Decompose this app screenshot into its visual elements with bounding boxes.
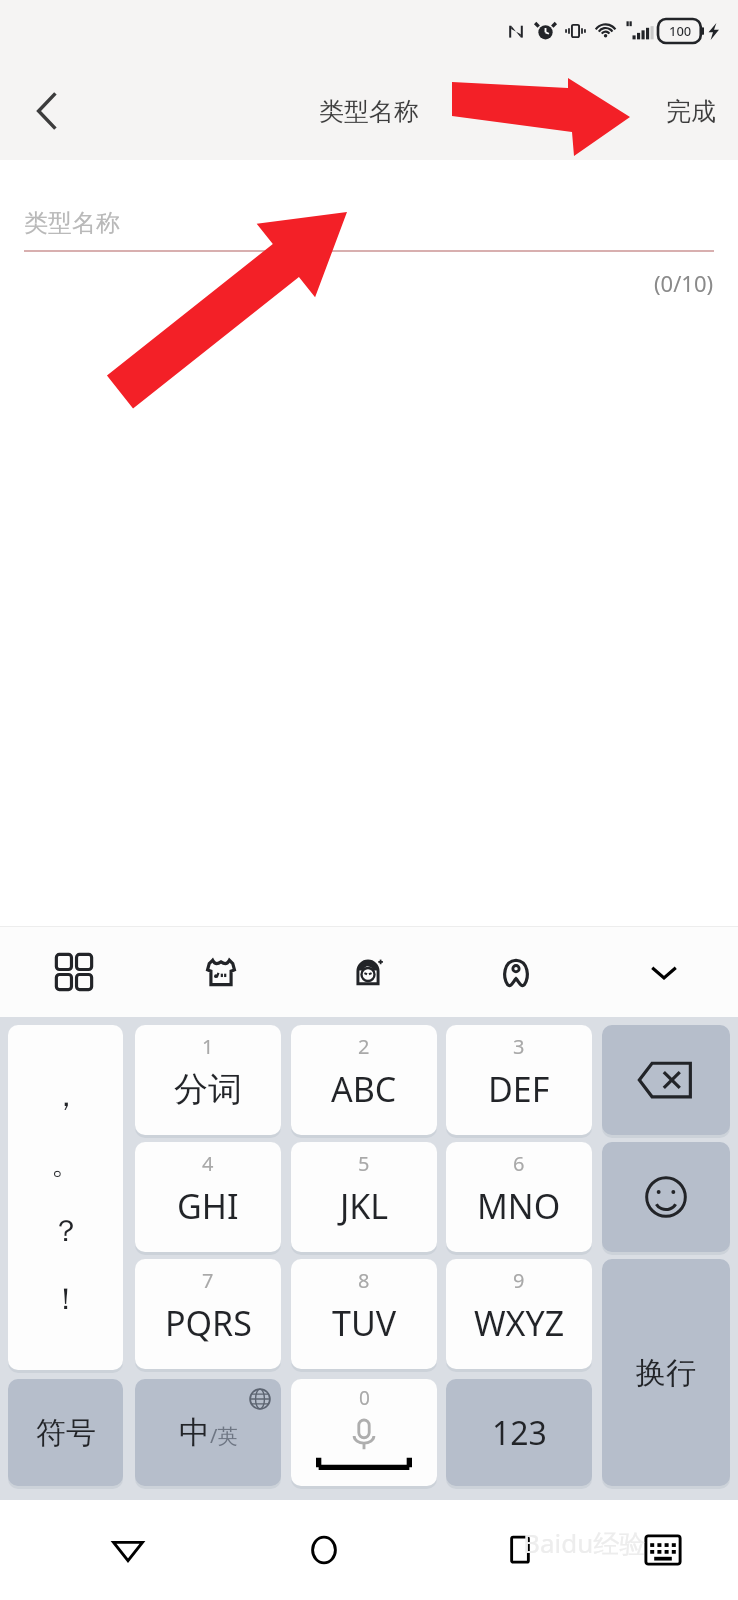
staticText: 7: [202, 1267, 214, 1294]
button[interactable]: 1: [135, 1025, 281, 1135]
button[interactable]: 9: [446, 1259, 592, 1369]
staticText: TUV: [332, 1300, 397, 1346]
button[interactable]: 换行: [602, 1259, 730, 1486]
button[interactable]: Recents: [422, 1500, 618, 1600]
staticText: 4: [202, 1150, 214, 1177]
staticText: 9: [513, 1267, 525, 1294]
staticText: MNO: [477, 1183, 561, 1229]
staticText: (0/10): [654, 268, 714, 298]
staticText: 完成: [666, 96, 716, 127]
staticText: PQRS: [165, 1300, 252, 1346]
staticText: GHI: [177, 1183, 239, 1229]
button[interactable]: Sticker: [294, 927, 442, 1017]
button[interactable]: 3: [446, 1025, 592, 1135]
button[interactable]: Home: [226, 1500, 422, 1600]
staticText: 分词: [174, 1068, 242, 1111]
button[interactable]: 123: [446, 1379, 592, 1486]
staticText: ，: [51, 1077, 81, 1115]
staticText: 100: [669, 22, 692, 40]
staticText: 123: [492, 1411, 547, 1455]
staticText: DEF: [488, 1066, 550, 1112]
staticText: 3: [513, 1033, 525, 1060]
button[interactable]: Backspace: [602, 1025, 730, 1135]
staticText: 换行: [636, 1354, 696, 1392]
staticText: /英: [210, 1422, 238, 1449]
staticText: 1: [202, 1033, 214, 1060]
button[interactable]: Back: [30, 1500, 226, 1600]
button[interactable]: 类型名称: [24, 202, 714, 244]
button[interactable]: 2: [291, 1025, 437, 1135]
staticText: 0: [359, 1385, 370, 1411]
button[interactable]: 5: [291, 1142, 437, 1252]
staticText: 8: [358, 1267, 370, 1294]
button[interactable]: Skin: [147, 927, 294, 1017]
button[interactable]: Account: [442, 927, 590, 1017]
staticText: ？: [51, 1212, 81, 1250]
staticText: 。: [51, 1145, 81, 1183]
staticText: ！: [51, 1280, 81, 1318]
button[interactable]: Emoji: [602, 1142, 730, 1252]
button[interactable]: 符号: [8, 1379, 123, 1486]
button[interactable]: Space: [291, 1379, 437, 1486]
staticText: 类型名称: [319, 96, 419, 127]
button[interactable]: 4: [135, 1142, 281, 1252]
staticText: ABC: [331, 1066, 397, 1112]
button[interactable]: Hide keyboard: [590, 927, 738, 1017]
button[interactable]: Back: [12, 76, 82, 146]
button[interactable]: Switch keyboard: [618, 1500, 708, 1600]
staticText: 中: [179, 1413, 210, 1452]
staticText: 2: [358, 1033, 370, 1060]
staticText: Baidu经验: [523, 1525, 646, 1561]
staticText: 类型名称: [24, 208, 120, 238]
staticText: 5: [358, 1150, 370, 1177]
staticText: JKL: [340, 1183, 389, 1229]
button[interactable]: 7: [135, 1259, 281, 1369]
button[interactable]: 中: [135, 1379, 281, 1486]
button[interactable]: 6: [446, 1142, 592, 1252]
button[interactable]: Panel: [0, 927, 147, 1017]
staticText: WXYZ: [474, 1300, 565, 1346]
button[interactable]: Punctuation: [8, 1025, 123, 1370]
staticText: 符号: [36, 1414, 96, 1452]
button[interactable]: 完成: [644, 82, 738, 141]
button[interactable]: 8: [291, 1259, 437, 1369]
staticText: 6: [513, 1150, 525, 1177]
